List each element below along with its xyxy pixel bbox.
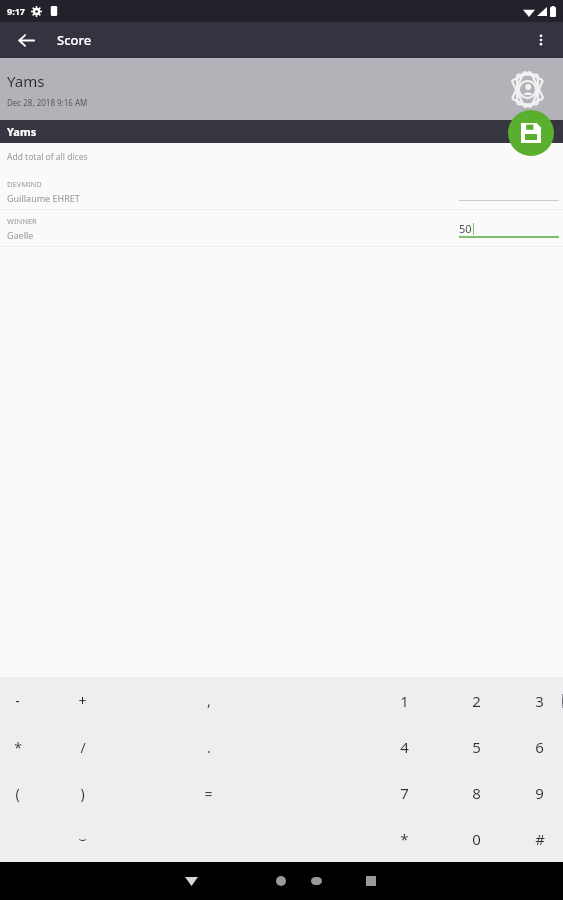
button[interactable]: * xyxy=(0,724,35,770)
button[interactable]: # xyxy=(516,816,563,862)
button[interactable]: Save xyxy=(508,110,554,156)
staticText: Guillaume EHRET xyxy=(7,192,80,204)
staticText: 0 xyxy=(472,829,481,849)
button[interactable]: - xyxy=(0,677,35,724)
button[interactable]: 9 xyxy=(516,770,563,816)
button[interactable]: WINNER xyxy=(0,210,563,246)
staticText: WINNER xyxy=(7,216,37,226)
staticText: 9:17 xyxy=(7,5,25,17)
staticText: 50 xyxy=(459,221,472,236)
button[interactable]: = xyxy=(130,770,287,816)
button[interactable]: 6 xyxy=(516,724,563,770)
button[interactable]: 2 xyxy=(436,677,516,724)
button[interactable]: Hide keyboard xyxy=(176,866,206,896)
button[interactable]: More options xyxy=(525,24,557,56)
button[interactable]: DEVMIND xyxy=(0,173,563,209)
staticText: Dec 28, 2018 9:16 AM xyxy=(7,97,88,108)
staticText: 9 xyxy=(535,783,544,803)
staticText: + xyxy=(78,691,87,710)
staticText: ) xyxy=(80,784,85,803)
button[interactable]: 7 xyxy=(373,770,436,816)
button[interactable]: 4 xyxy=(373,724,436,770)
staticText: = xyxy=(204,784,213,803)
staticText: 8 xyxy=(472,783,481,803)
staticText: Add total of all dices xyxy=(7,151,88,163)
staticText: 7 xyxy=(400,783,409,803)
staticText: * xyxy=(400,829,409,849)
button[interactable]: 1 xyxy=(373,677,436,724)
staticText: 3 xyxy=(535,691,544,711)
staticText: ( xyxy=(15,784,20,803)
staticText: Gaelle xyxy=(7,229,34,241)
button[interactable]: 0 xyxy=(436,816,516,862)
button[interactable]: 8 xyxy=(436,770,516,816)
button[interactable]: / xyxy=(35,724,130,770)
button[interactable]: ) xyxy=(35,770,130,816)
staticText: / xyxy=(80,738,86,757)
staticText: Yams xyxy=(7,71,45,91)
button[interactable]: Switch keyboard xyxy=(302,867,330,895)
staticText: . xyxy=(207,738,211,757)
button[interactable]: Back xyxy=(10,24,42,56)
staticText: # xyxy=(535,829,545,849)
staticText: - xyxy=(15,691,20,710)
button[interactable]: Home xyxy=(266,866,296,896)
button[interactable]: * xyxy=(373,816,436,862)
staticText: 5 xyxy=(472,737,481,757)
button[interactable]: , xyxy=(130,677,287,724)
staticText: 1 xyxy=(400,691,409,711)
button[interactable]: 5 xyxy=(436,724,516,770)
button[interactable]: Recent apps xyxy=(356,866,386,896)
staticText: ⌣ xyxy=(78,833,87,846)
staticText: Yams xyxy=(7,124,37,139)
staticText: 2 xyxy=(472,691,481,711)
button[interactable]: ( xyxy=(0,770,35,816)
staticText: 4 xyxy=(400,737,409,757)
staticText: Score xyxy=(57,31,92,49)
button[interactable]: + xyxy=(35,677,130,724)
staticText: , xyxy=(207,691,211,710)
button[interactable]: 3 xyxy=(516,677,563,724)
staticText: 6 xyxy=(535,737,544,757)
staticText: * xyxy=(14,738,22,757)
button[interactable]: ⌣ xyxy=(35,816,130,862)
staticText: DEVMIND xyxy=(7,179,42,189)
